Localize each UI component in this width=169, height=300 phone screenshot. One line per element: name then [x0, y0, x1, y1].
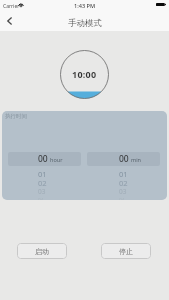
- staticText: 00: [38, 153, 48, 165]
- staticText: 00: [119, 153, 129, 165]
- staticText: 02: [119, 178, 128, 187]
- staticText: 03: [38, 187, 46, 196]
- staticText: 启动: [35, 247, 49, 256]
- staticText: 02: [38, 178, 47, 187]
- staticText: 执行时间: [5, 113, 27, 120]
- button[interactable]: Back: [1, 13, 17, 29]
- staticText: min: [131, 156, 141, 163]
- staticText: hour: [50, 156, 63, 163]
- staticText: 03: [119, 187, 127, 196]
- button[interactable]: 启动: [17, 243, 67, 259]
- staticText: Carrier: [3, 3, 20, 10]
- staticText: 01: [38, 169, 47, 178]
- staticText: 手动模式: [68, 18, 102, 29]
- staticText: 01: [119, 169, 128, 178]
- button[interactable]: 停止: [101, 243, 151, 259]
- staticText: 1:43 PM: [74, 2, 96, 10]
- staticText: 10:00: [72, 68, 97, 80]
- staticText: 停止: [119, 247, 133, 256]
